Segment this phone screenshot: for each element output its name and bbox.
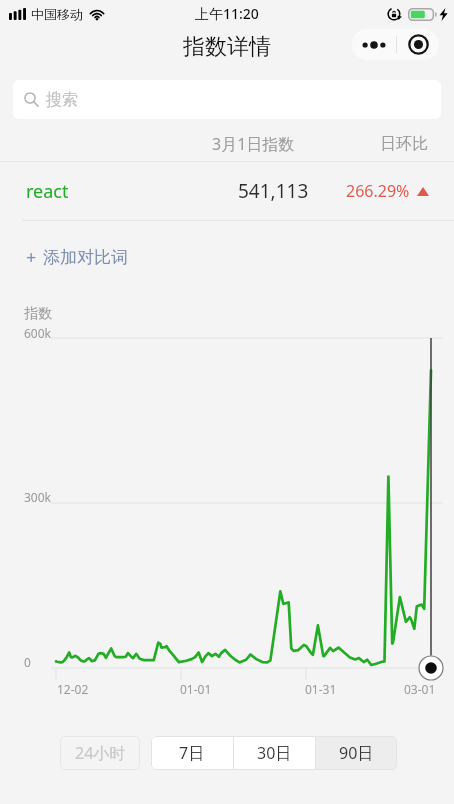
staticText: 30日 bbox=[257, 742, 292, 764]
button[interactable]: 90日 bbox=[316, 736, 397, 770]
button[interactable]: 30日 bbox=[234, 736, 315, 770]
staticText: 01-31 bbox=[305, 681, 337, 697]
staticText: 541,113 bbox=[238, 178, 309, 204]
staticText: 日环比 bbox=[380, 134, 428, 154]
button[interactable]: 7日 bbox=[151, 736, 233, 770]
staticText: 12-02 bbox=[57, 681, 89, 697]
staticText: 03-01 bbox=[404, 681, 436, 697]
staticText: 600k bbox=[24, 325, 52, 341]
staticText: 90日 bbox=[339, 742, 374, 764]
staticText: 添加对比词 bbox=[43, 247, 128, 268]
staticText: 搜索 bbox=[46, 90, 78, 110]
staticText: 24小时 bbox=[75, 742, 126, 764]
button[interactable]: 24小时 bbox=[60, 736, 140, 770]
staticText: 指数 bbox=[24, 305, 52, 323]
staticText: 0 bbox=[24, 654, 31, 670]
staticText: 7日 bbox=[179, 742, 205, 764]
button[interactable]: + bbox=[0, 225, 454, 289]
staticText: 指数详情 bbox=[183, 33, 271, 61]
staticText: 01-01 bbox=[180, 681, 212, 697]
staticText: 上午11:20 bbox=[195, 4, 259, 23]
staticText: 300k bbox=[24, 489, 52, 505]
button[interactable]: More options bbox=[352, 29, 396, 60]
button[interactable]: 搜索 bbox=[13, 80, 441, 119]
staticText: 3月1日指数 bbox=[212, 133, 295, 155]
staticText: 中国移动 bbox=[31, 6, 83, 22]
button[interactable]: Close mini program bbox=[397, 29, 439, 60]
staticText: + bbox=[26, 245, 37, 270]
staticText: react bbox=[26, 179, 69, 204]
staticText: 266.29% bbox=[346, 180, 410, 202]
button[interactable]: react bbox=[0, 162, 454, 220]
